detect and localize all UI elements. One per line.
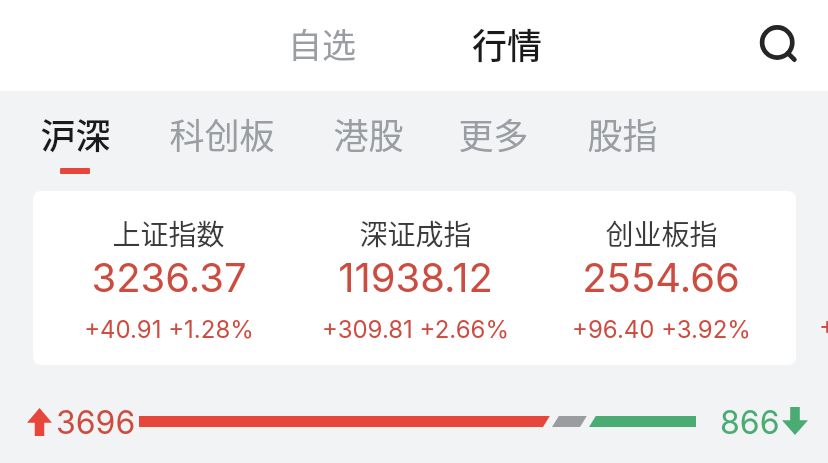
staticText: +1.57 +0.42%	[819, 312, 828, 342]
staticText: 自选	[288, 19, 356, 68]
button[interactable]: 上证指数	[33, 191, 796, 365]
staticText: 沪深	[40, 108, 111, 159]
staticText: +309.81 +2.66%	[322, 315, 509, 344]
button[interactable]: 沪深	[5, 91, 145, 191]
staticText: 2554.66	[582, 253, 740, 301]
button[interactable]: 股指	[552, 91, 692, 191]
staticText: 3236.37	[91, 253, 247, 301]
button[interactable]: 科创板	[152, 91, 292, 191]
staticText: 866	[720, 403, 780, 442]
button[interactable]: 自选	[264, 9, 380, 77]
button[interactable]: Search	[736, 2, 818, 84]
staticText: 3696	[56, 403, 136, 442]
staticText: 更多	[458, 108, 529, 159]
staticText: 上证指数	[112, 213, 225, 254]
staticText: 股指	[587, 108, 658, 159]
staticText: 港股	[333, 108, 404, 159]
staticText: 行情	[472, 18, 543, 69]
staticText: +96.40 +3.92%	[572, 315, 751, 344]
button[interactable]: 行情	[449, 9, 565, 77]
staticText: +40.91 +1.28%	[84, 315, 254, 344]
staticText: 深证成指	[359, 213, 472, 254]
button[interactable]: 更多	[423, 91, 563, 191]
staticText: 科创板	[169, 108, 275, 159]
staticText: 11938.12	[338, 253, 493, 301]
staticText: 创业板指	[605, 213, 718, 254]
button[interactable]: 3696	[0, 400, 828, 448]
button[interactable]: 港股	[298, 91, 438, 191]
